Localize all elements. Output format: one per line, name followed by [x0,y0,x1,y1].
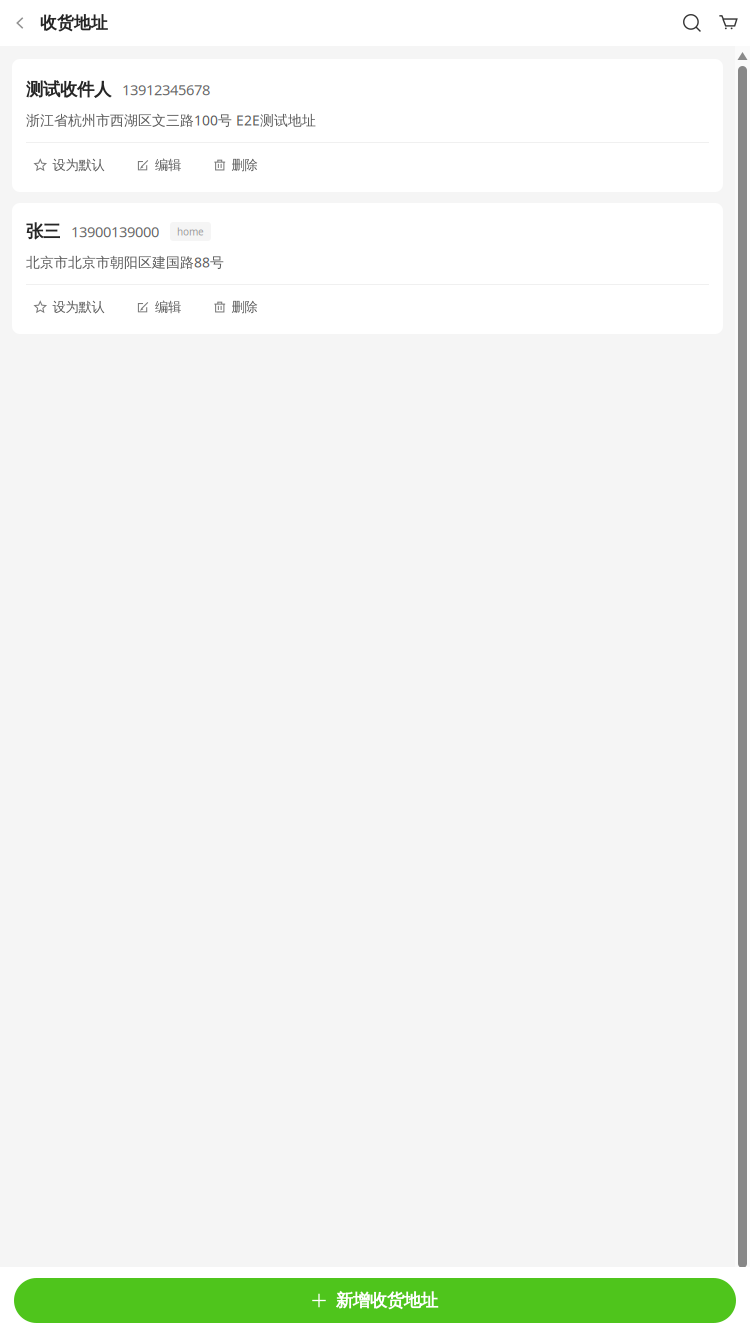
button[interactable]: 编辑 [137,156,181,174]
button[interactable]: 设为默认 [34,298,104,316]
staticText: 测试收件人 [26,79,111,100]
staticText: 删除 [231,299,257,315]
staticText: 编辑 [155,157,181,173]
staticText: 设为默认 [52,299,104,315]
staticText: 设为默认 [52,157,104,173]
staticText: 新增收货地址 [336,1290,438,1311]
staticText: home [177,225,204,238]
staticText: 13912345678 [122,79,210,99]
button[interactable]: 新增收货地址 [14,1278,736,1323]
staticText: 删除 [231,157,257,173]
button[interactable]: 删除 [214,298,257,316]
button[interactable]: 设为默认 [34,156,104,174]
staticText: 张三 [26,221,60,242]
staticText: 编辑 [155,299,181,315]
button[interactable]: Shopping cart [710,0,746,46]
staticText: 收货地址 [40,12,108,33]
button[interactable]: 删除 [214,156,257,174]
staticText: 13900139000 [71,221,159,241]
button[interactable]: Back [0,0,40,46]
button[interactable]: 编辑 [137,298,181,316]
staticText: 浙江省杭州市西湖区文三路100号 E2E测试地址 [26,111,316,129]
staticText: 北京市北京市朝阳区建国路88号 [26,253,224,271]
button[interactable]: Search [674,0,710,46]
